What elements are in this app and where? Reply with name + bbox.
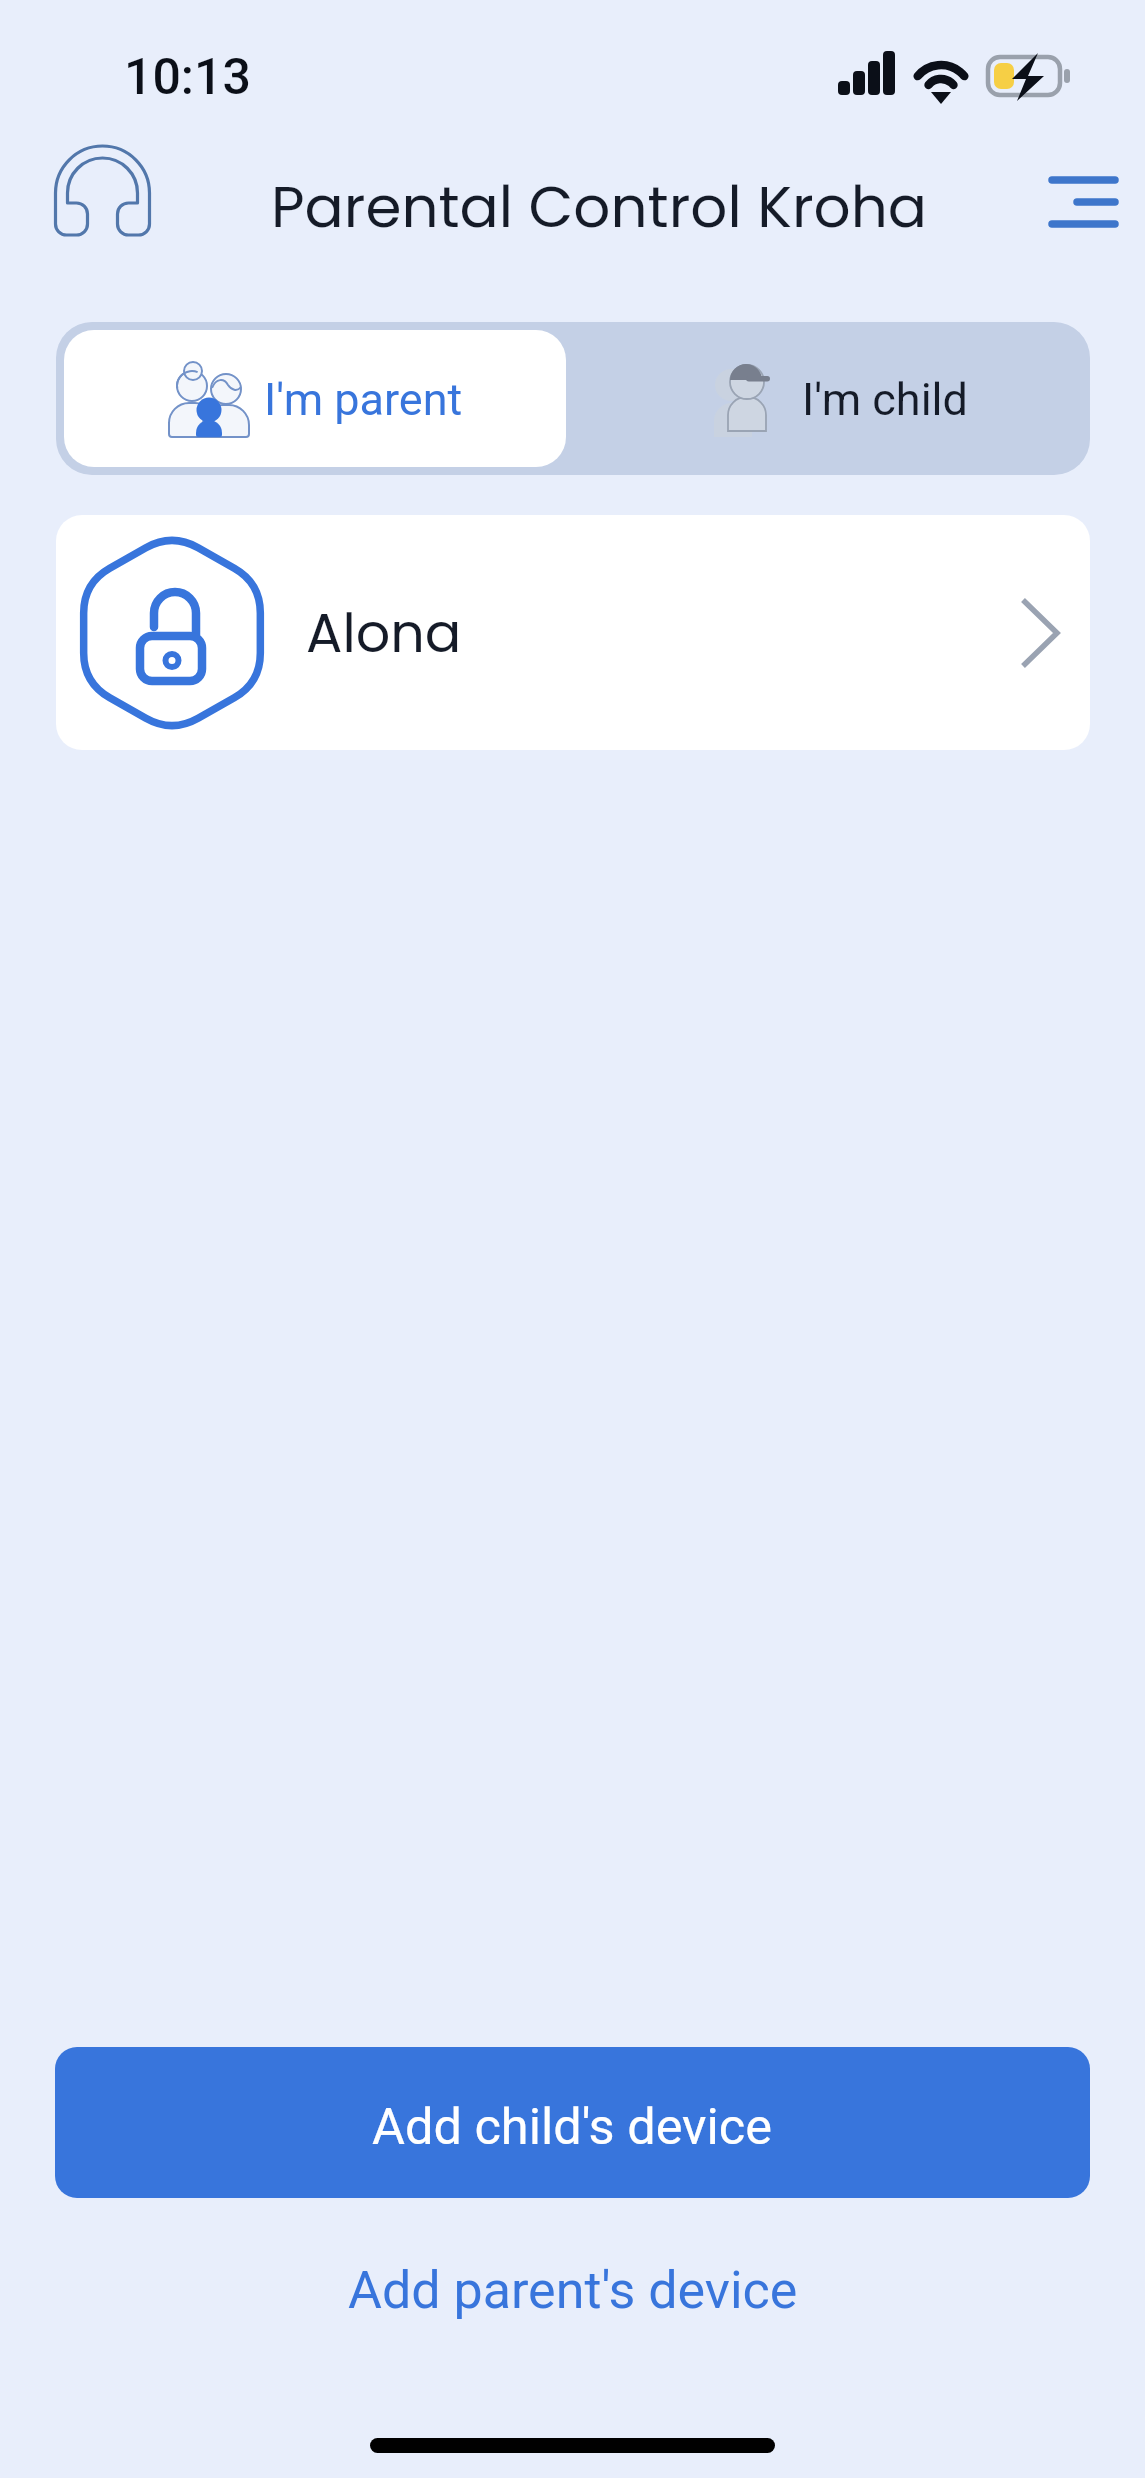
staticText: Parental Control Kroha xyxy=(271,166,928,247)
button[interactable]: Add parent's device xyxy=(0,2240,1145,2340)
button[interactable]: Menu xyxy=(1031,156,1129,248)
staticText: Add parent's device xyxy=(348,2260,798,2321)
staticText: I'm parent xyxy=(264,373,463,426)
staticText: Alona xyxy=(306,595,462,671)
button[interactable]: Alona xyxy=(56,515,1090,750)
staticText: 10:13 xyxy=(124,48,251,107)
staticText: Add child's device xyxy=(372,2097,773,2156)
button[interactable]: Headphones xyxy=(50,143,155,243)
button[interactable]: I'm child xyxy=(579,322,1090,475)
button[interactable]: Add child's device xyxy=(55,2047,1090,2198)
staticText: I'm child xyxy=(802,373,968,426)
button[interactable]: I'm parent xyxy=(64,330,566,467)
